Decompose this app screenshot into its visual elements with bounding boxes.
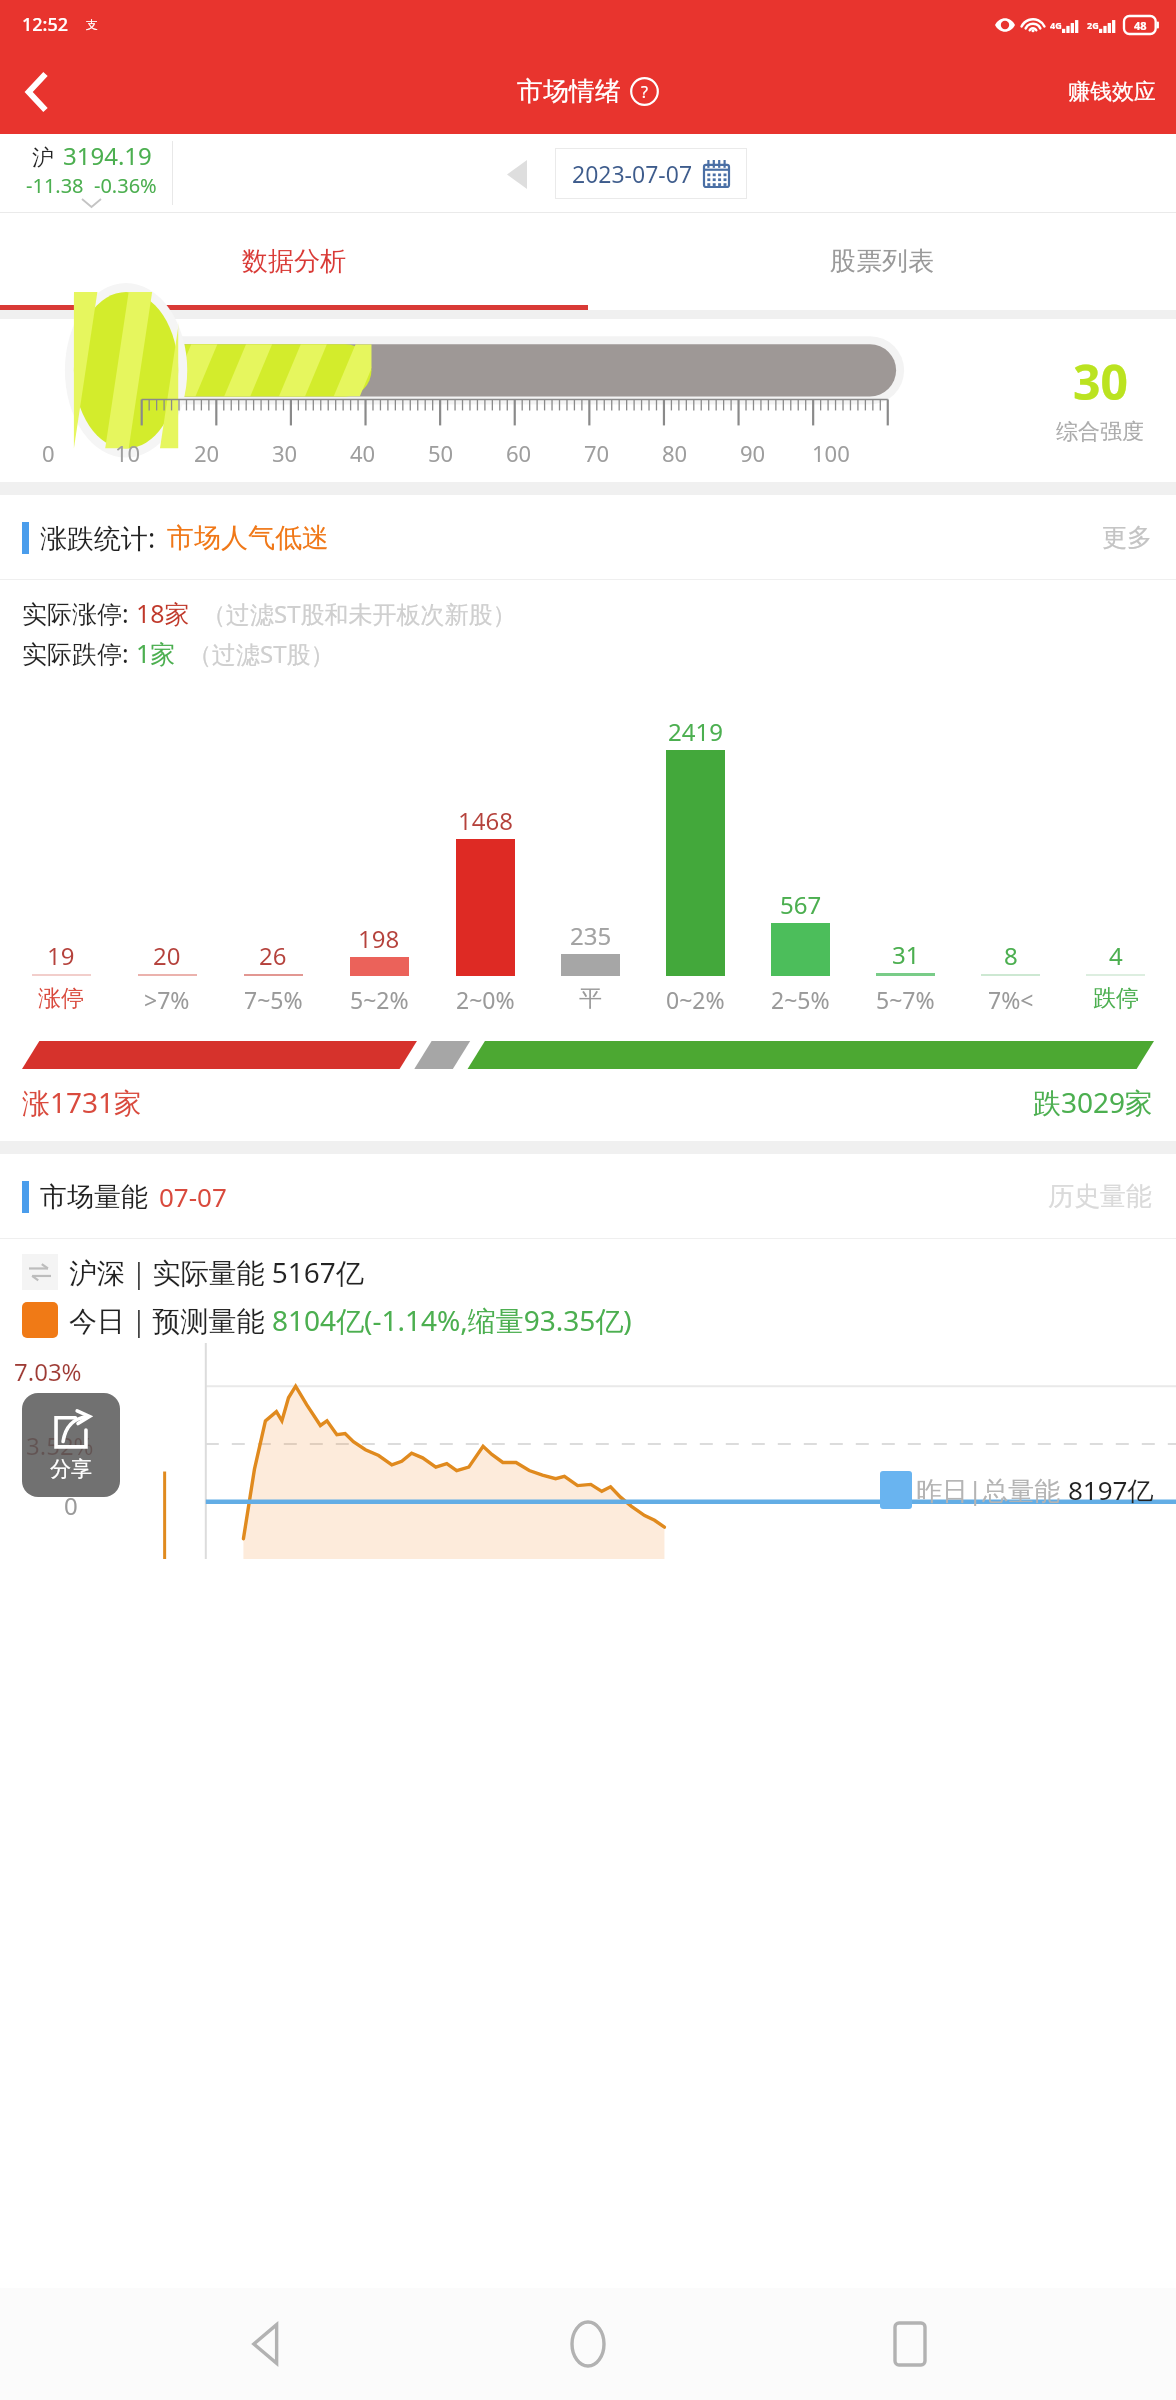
staticText: 7.03%: [14, 1355, 82, 1388]
button[interactable]: Share: [22, 1393, 120, 1497]
staticText: 综合强度: [1056, 418, 1144, 446]
staticText: 8104亿(-1.14%,缩量93.35亿): [272, 1301, 632, 1339]
staticText: 2G: [1087, 19, 1099, 31]
staticText: 31: [892, 938, 920, 971]
staticText: 实际跌停:: [22, 636, 136, 670]
staticText: 更多: [1102, 522, 1152, 553]
staticText: 涨1731家: [22, 1083, 143, 1121]
staticText: 0~2%: [666, 984, 725, 1015]
staticText: 48: [1134, 18, 1147, 33]
staticText: 1468: [458, 804, 513, 837]
staticText: 20: [153, 939, 181, 972]
button[interactable]: Recents: [854, 2288, 966, 2400]
staticText: 3194.19: [63, 139, 152, 172]
staticText: ?: [641, 81, 648, 103]
staticText: 2419: [668, 715, 723, 748]
staticText: 2~0%: [456, 984, 515, 1015]
staticText: 0: [42, 438, 55, 468]
staticText: -11.38 -0.36%: [26, 172, 157, 199]
staticText: 60: [506, 438, 532, 468]
button[interactable]: Back: [0, 55, 74, 129]
staticText: （过滤ST股和未开板次新股）: [202, 597, 517, 630]
staticText: 18家: [136, 596, 190, 630]
staticText: 4G: [1050, 19, 1062, 31]
staticText: 20: [194, 438, 220, 468]
staticText: 数据分析: [242, 245, 346, 278]
staticText: 12:52: [22, 12, 69, 37]
staticText: 8: [1004, 939, 1018, 972]
staticText: 平: [579, 984, 602, 1013]
staticText: 赚钱效应: [1068, 78, 1156, 106]
staticText: 2023-07-07: [572, 158, 693, 189]
staticText: 40: [350, 438, 376, 468]
staticText: 10: [115, 438, 141, 468]
staticText: 实际涨停:: [22, 596, 136, 630]
staticText: 0: [64, 1489, 78, 1522]
staticText: 支: [86, 17, 98, 32]
staticText: 2~5%: [771, 984, 830, 1015]
staticText: 今日｜预测量能: [69, 1301, 272, 1339]
button[interactable]: Back: [210, 2288, 322, 2400]
staticText: 26: [259, 939, 287, 972]
staticText: 50: [428, 438, 454, 468]
button[interactable]: 2023-07-07: [555, 148, 747, 199]
staticText: （过滤ST股）: [188, 637, 335, 670]
button[interactable]: Previous day: [499, 156, 535, 192]
staticText: 30: [272, 438, 298, 468]
button[interactable]: 市场量能: [0, 1154, 1176, 1238]
staticText: 198: [358, 922, 400, 955]
staticText: 7%<: [988, 984, 1034, 1015]
staticText: 分享: [50, 1456, 92, 1482]
staticText: 7~5%: [244, 984, 303, 1015]
staticText: 8197亿: [1068, 1472, 1154, 1508]
staticText: 30: [1073, 349, 1128, 414]
staticText: 沪深｜实际量能 5167亿: [69, 1253, 364, 1291]
staticText: 涨停: [38, 984, 84, 1013]
button[interactable]: 涨跌统计:: [0, 495, 1176, 579]
staticText: 历史量能: [1048, 1180, 1152, 1213]
staticText: 100: [812, 438, 850, 468]
staticText: 1家: [136, 636, 176, 670]
staticText: 跌停: [1093, 984, 1139, 1013]
staticText: 市场情绪: [517, 75, 621, 108]
staticText: 跌3029家: [1033, 1083, 1154, 1121]
button[interactable]: 数据分析: [0, 213, 588, 310]
button[interactable]: 股票列表: [588, 213, 1176, 310]
staticText: 沪: [32, 144, 54, 172]
button[interactable]: Home: [532, 2288, 644, 2400]
staticText: 4: [1109, 939, 1123, 972]
staticText: 市场人气低迷: [167, 521, 329, 555]
staticText: 昨日|总量能: [916, 1472, 1068, 1508]
staticText: 5~2%: [350, 984, 409, 1015]
staticText: 股票列表: [830, 245, 934, 278]
staticText: 07-07: [159, 1179, 227, 1214]
staticText: 80: [662, 438, 688, 468]
staticText: 70: [584, 438, 610, 468]
staticText: 涨跌统计:: [40, 519, 156, 556]
staticText: 5~7%: [876, 984, 935, 1015]
button[interactable]: 赚钱效应: [1048, 49, 1176, 134]
staticText: 235: [570, 919, 612, 952]
staticText: 90: [740, 438, 766, 468]
staticText: >7%: [144, 984, 190, 1015]
staticText: 3.52%: [26, 1429, 94, 1462]
staticText: 市场量能: [40, 1180, 148, 1214]
staticText: 19: [47, 939, 75, 972]
button[interactable]: Help: [630, 77, 659, 106]
staticText: 567: [780, 888, 822, 921]
